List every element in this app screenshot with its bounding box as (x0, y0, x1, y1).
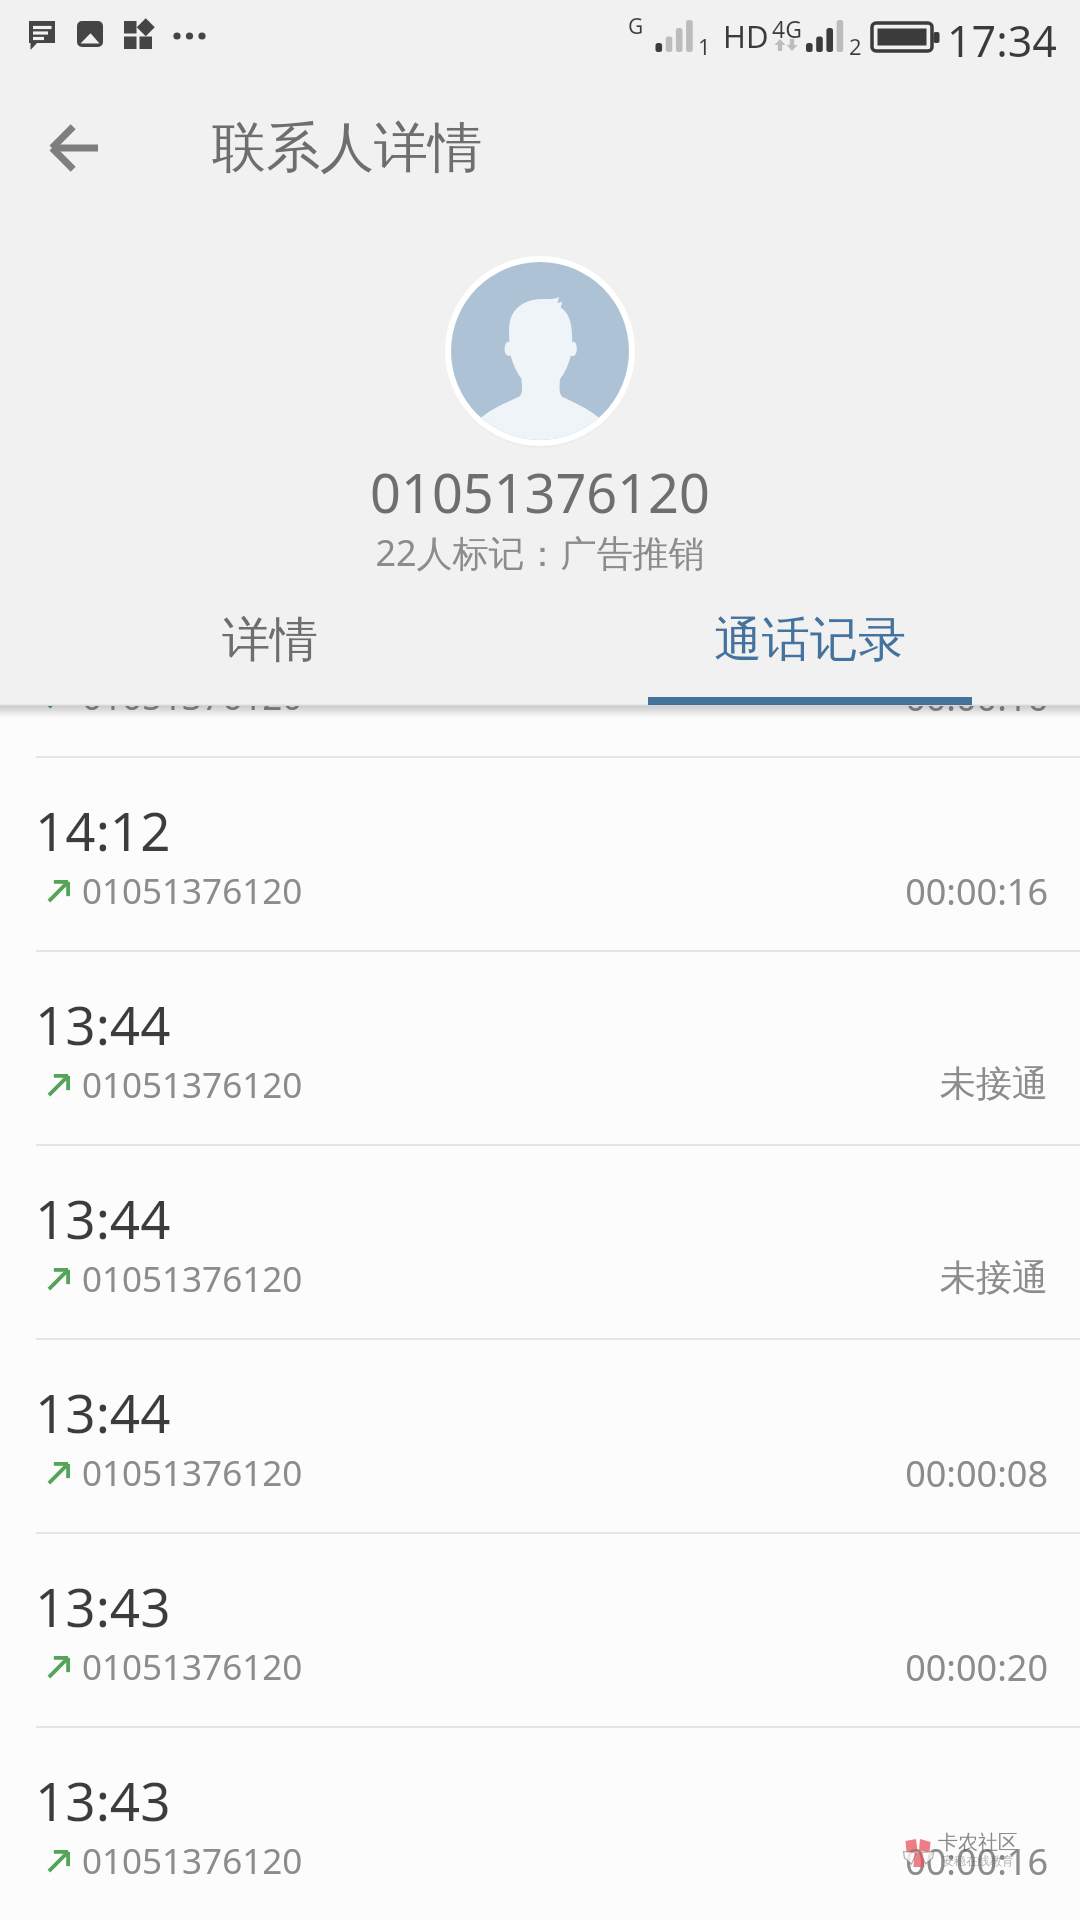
staticText: 00:00:08 (0, 1449, 1048, 1498)
staticText: 13:44 (35, 1376, 171, 1448)
button[interactable]: 14:12 (0, 564, 1080, 758)
button[interactable]: 13:43 (0, 1534, 1080, 1728)
staticText: 通话记录 (714, 610, 906, 670)
staticText: 详情 (222, 610, 318, 670)
staticText: 13:43 (35, 1764, 171, 1836)
staticText: 00:00:16 (0, 1837, 1048, 1886)
staticText: 01051376120 (82, 1061, 303, 1109)
staticText: 01051376120 (82, 1449, 303, 1497)
staticText: 卡农社区 (938, 1830, 1018, 1855)
button[interactable]: 13:43 (0, 1728, 1080, 1920)
staticText: 1 (698, 31, 711, 61)
staticText: 00:00:20 (0, 1643, 1048, 1692)
staticText: 17:34 (947, 11, 1057, 70)
staticText: 01051376120 (82, 1643, 303, 1691)
staticText: 13:44 (35, 988, 171, 1060)
staticText: 2 (849, 31, 862, 61)
staticText: 00:00:16 (0, 673, 1048, 722)
button[interactable]: 详情 (0, 587, 540, 693)
button[interactable]: 通话记录 (540, 587, 1080, 693)
staticText: 00:00:16 (0, 867, 1048, 916)
staticText: 14:12 (35, 794, 171, 866)
button[interactable]: 13:44 (0, 952, 1080, 1146)
staticText: 13:43 (35, 1570, 171, 1642)
staticText: 01051376120 (82, 1837, 303, 1885)
staticText: 01051376120 (82, 1255, 303, 1303)
staticText: 01051376120 (82, 867, 303, 915)
staticText: 01051376120 (82, 673, 303, 721)
button[interactable]: 13:44 (0, 1340, 1080, 1534)
staticText: 13:44 (35, 1182, 171, 1254)
button[interactable]: Back (52, 126, 98, 170)
button[interactable]: 14:12 (0, 758, 1080, 952)
staticText: 未接通 (0, 1255, 1048, 1300)
staticText: 联系人详情 (212, 114, 482, 182)
staticText: 01051376120 (0, 455, 1080, 529)
staticText: 22人标记：广告推销 (0, 528, 1080, 577)
staticText: 4G (772, 13, 802, 44)
staticText: 安稳在线教育 (942, 1853, 1014, 1868)
staticText: 未接通 (0, 1061, 1048, 1106)
staticText: G (628, 12, 644, 41)
button[interactable]: 13:44 (0, 1146, 1080, 1340)
staticText: HD (723, 15, 769, 57)
